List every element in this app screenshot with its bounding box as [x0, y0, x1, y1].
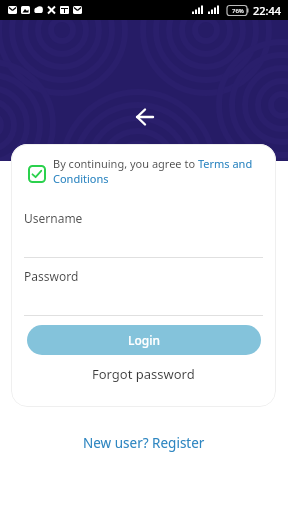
button[interactable]: Login: [27, 325, 261, 355]
button[interactable]: By continuing, you agree to Terms and Co…: [53, 156, 265, 186]
button[interactable]: [28, 165, 46, 183]
button[interactable]: Username: [24, 210, 263, 258]
button[interactable]: Password: [24, 268, 263, 316]
staticText: New user? Register: [83, 434, 205, 452]
staticText: Username: [24, 210, 83, 226]
staticText: Login: [128, 332, 160, 348]
staticText: Password: [24, 268, 79, 284]
button[interactable]: New user? Register: [0, 430, 288, 456]
staticText: 22:44: [253, 3, 282, 18]
staticText: 76%: [232, 7, 244, 15]
button[interactable]: [131, 103, 159, 131]
staticText: Forgot password: [92, 365, 195, 383]
button[interactable]: Forgot password: [11, 362, 276, 386]
